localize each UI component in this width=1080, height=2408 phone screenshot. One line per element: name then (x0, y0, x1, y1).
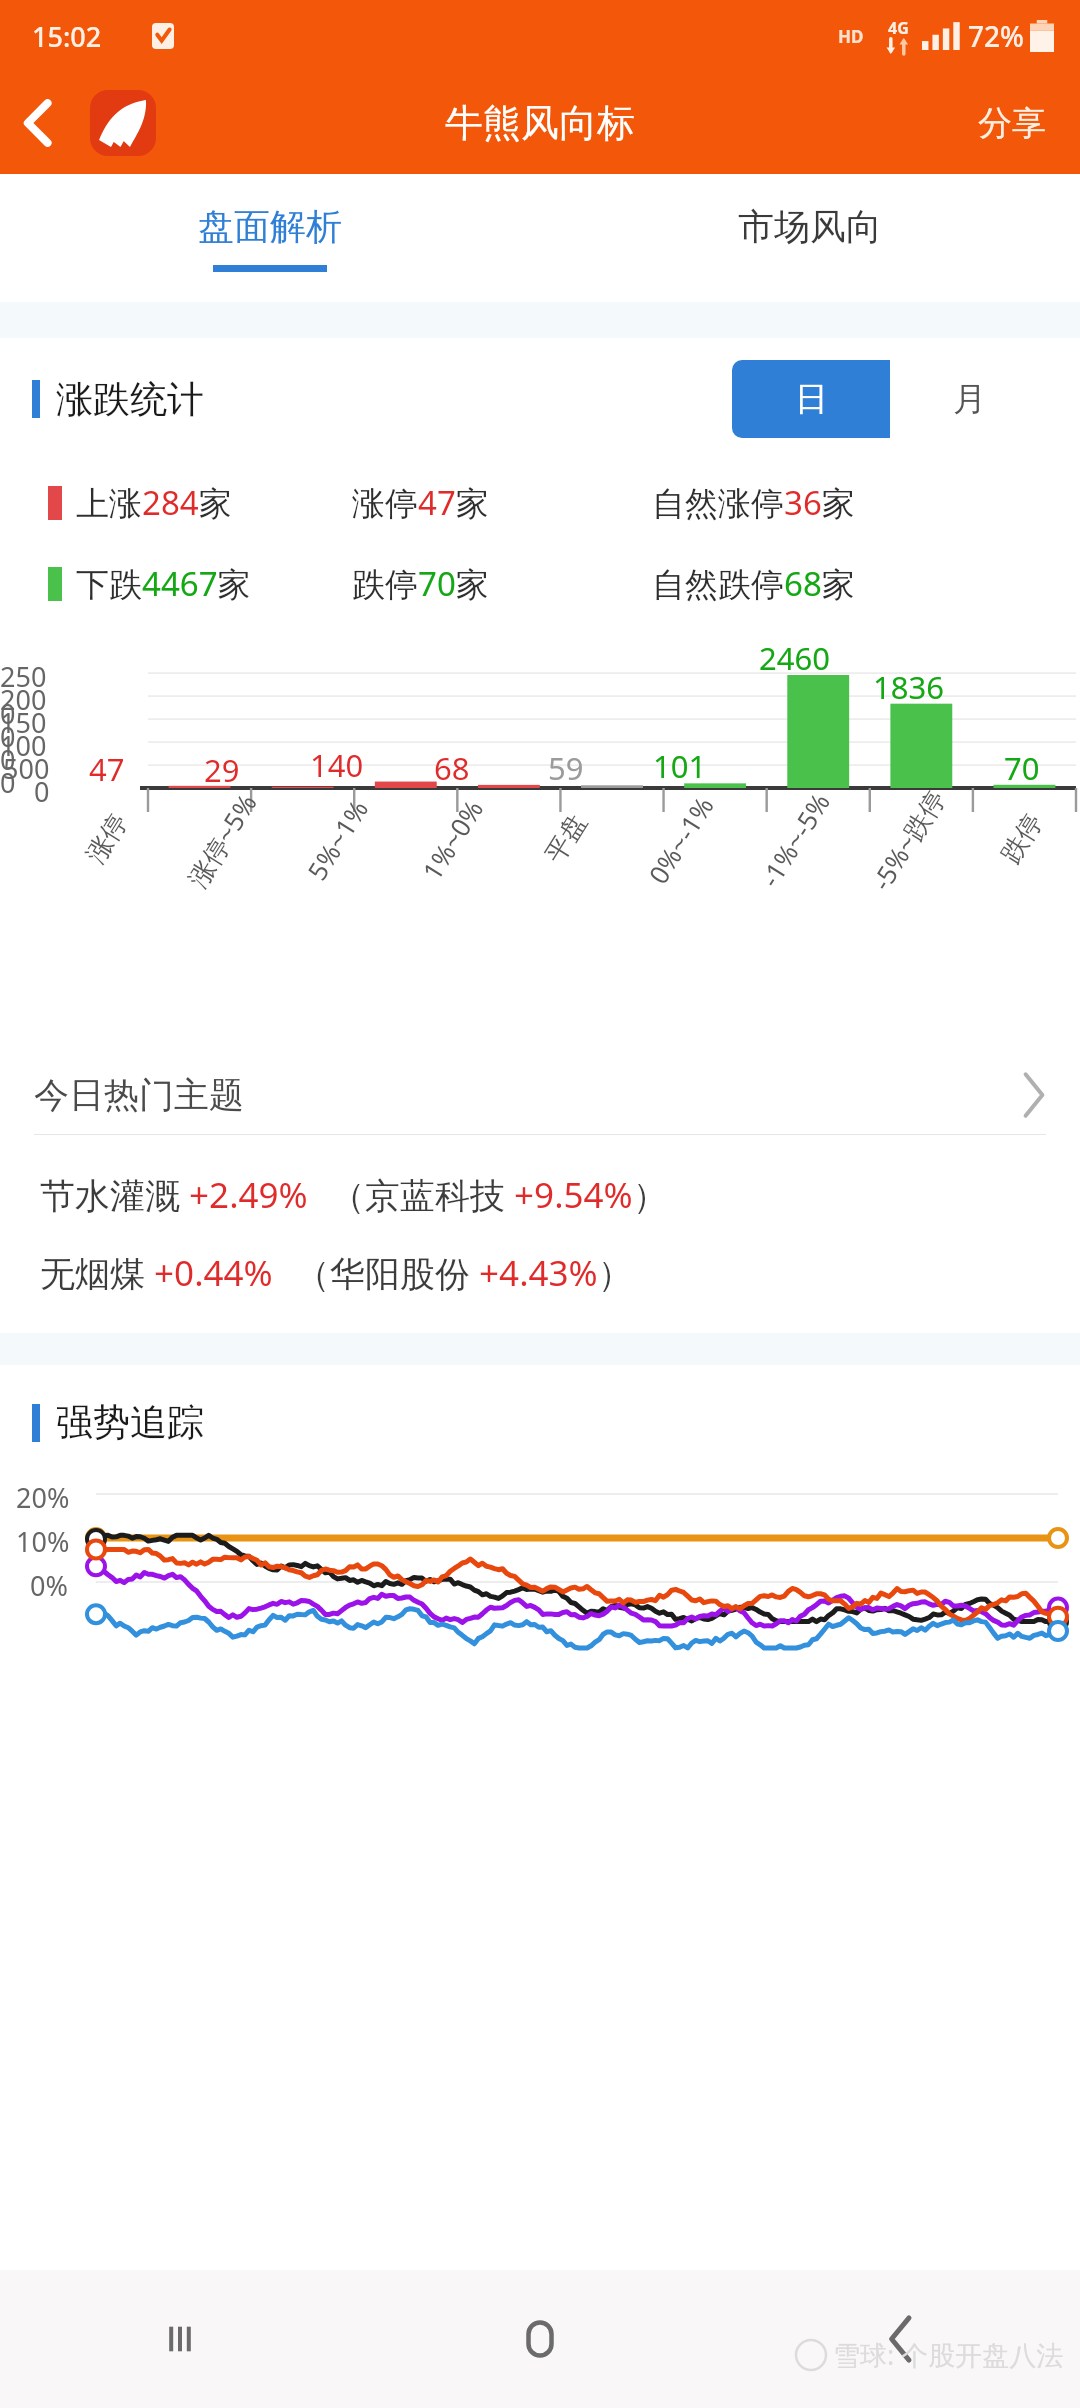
button[interactable]: 市场风向 (540, 174, 1080, 302)
button[interactable]: 返回 (0, 85, 76, 161)
staticText: 自然跌停68家 (652, 561, 855, 606)
staticText: （京蓝科技 +9.54%） (330, 1171, 668, 1219)
button[interactable]: 日 (732, 360, 890, 438)
staticText: 140 (310, 744, 364, 786)
button[interactable]: 返回 (720, 2270, 1080, 2408)
button[interactable]: 主页 (360, 2270, 720, 2408)
staticText: 70 (1004, 747, 1040, 789)
staticText: 市场风向 (738, 204, 882, 249)
staticText: 500 (3, 750, 50, 787)
staticText: 强势追踪 (56, 1399, 204, 1446)
staticText: 10% (16, 1523, 70, 1560)
staticText: 涨停 (79, 808, 135, 869)
staticText: 下跌4467家 (76, 561, 251, 606)
staticText: 涨停~5% (179, 786, 265, 894)
staticText: 无烟煤 +0.44% (40, 1249, 273, 1297)
staticText: 跌停 (994, 808, 1050, 869)
staticText: 月 (953, 378, 986, 420)
button[interactable]: 应用图标 (90, 90, 156, 156)
staticText: 29 (204, 749, 240, 791)
staticText: 2500 (0, 658, 50, 732)
staticText: 2000 (0, 681, 50, 755)
button[interactable]: 今日热门主题 (0, 1056, 1080, 1134)
staticText: 72% (968, 17, 1024, 55)
staticText: 节水灌溉 +2.49% (40, 1171, 308, 1219)
button[interactable]: 最近任务 (0, 2270, 360, 2408)
staticText: 分享 (978, 102, 1046, 145)
staticText: 平盘 (538, 808, 594, 869)
staticText: -1%~-5% (752, 786, 837, 893)
staticText: 0%~-1% (640, 789, 721, 890)
staticText: 上涨284家 (76, 480, 232, 525)
staticText: 涨停47家 (352, 480, 489, 525)
staticText: 牛熊风向标 (445, 99, 635, 147)
staticText: 5%~1% (299, 793, 375, 886)
button[interactable]: 节水灌溉 +2.49% (0, 1171, 1080, 1219)
staticText: 自然涨停36家 (652, 480, 855, 525)
staticText: 2460 (759, 637, 830, 679)
staticText: HD (838, 25, 864, 48)
staticText: 0 (34, 773, 50, 810)
staticText: 日 (795, 378, 828, 420)
staticText: （华阳股份 +4.43%） (295, 1249, 633, 1297)
staticText: 1836 (873, 666, 944, 708)
staticText: 20% (16, 1479, 70, 1516)
staticText: 雪球: 个股开盘八法 (833, 2336, 1064, 2373)
staticText: 15:02 (32, 18, 102, 55)
button[interactable]: 盘面解析 (0, 174, 540, 302)
staticText: 0% (30, 1567, 68, 1604)
button[interactable]: 分享 (944, 78, 1080, 169)
staticText: 1500 (0, 704, 50, 778)
button[interactable]: 无烟煤 +0.44% (0, 1249, 1080, 1297)
staticText: 涨跌统计 (56, 376, 204, 423)
button[interactable]: 月 (890, 360, 1048, 438)
staticText: 68 (434, 747, 470, 789)
staticText: 47 (89, 748, 125, 790)
staticText: 59 (548, 747, 584, 789)
staticText: 今日热门主题 (34, 1073, 244, 1117)
staticText: 盘面解析 (198, 204, 342, 249)
staticText: -5%~跌停 (863, 783, 953, 897)
staticText: 1%~0% (414, 793, 490, 886)
staticText: 跌停70家 (352, 561, 489, 606)
staticText: 101 (653, 745, 707, 787)
staticText: 4G (888, 17, 909, 39)
staticText: 1000 (0, 727, 50, 801)
